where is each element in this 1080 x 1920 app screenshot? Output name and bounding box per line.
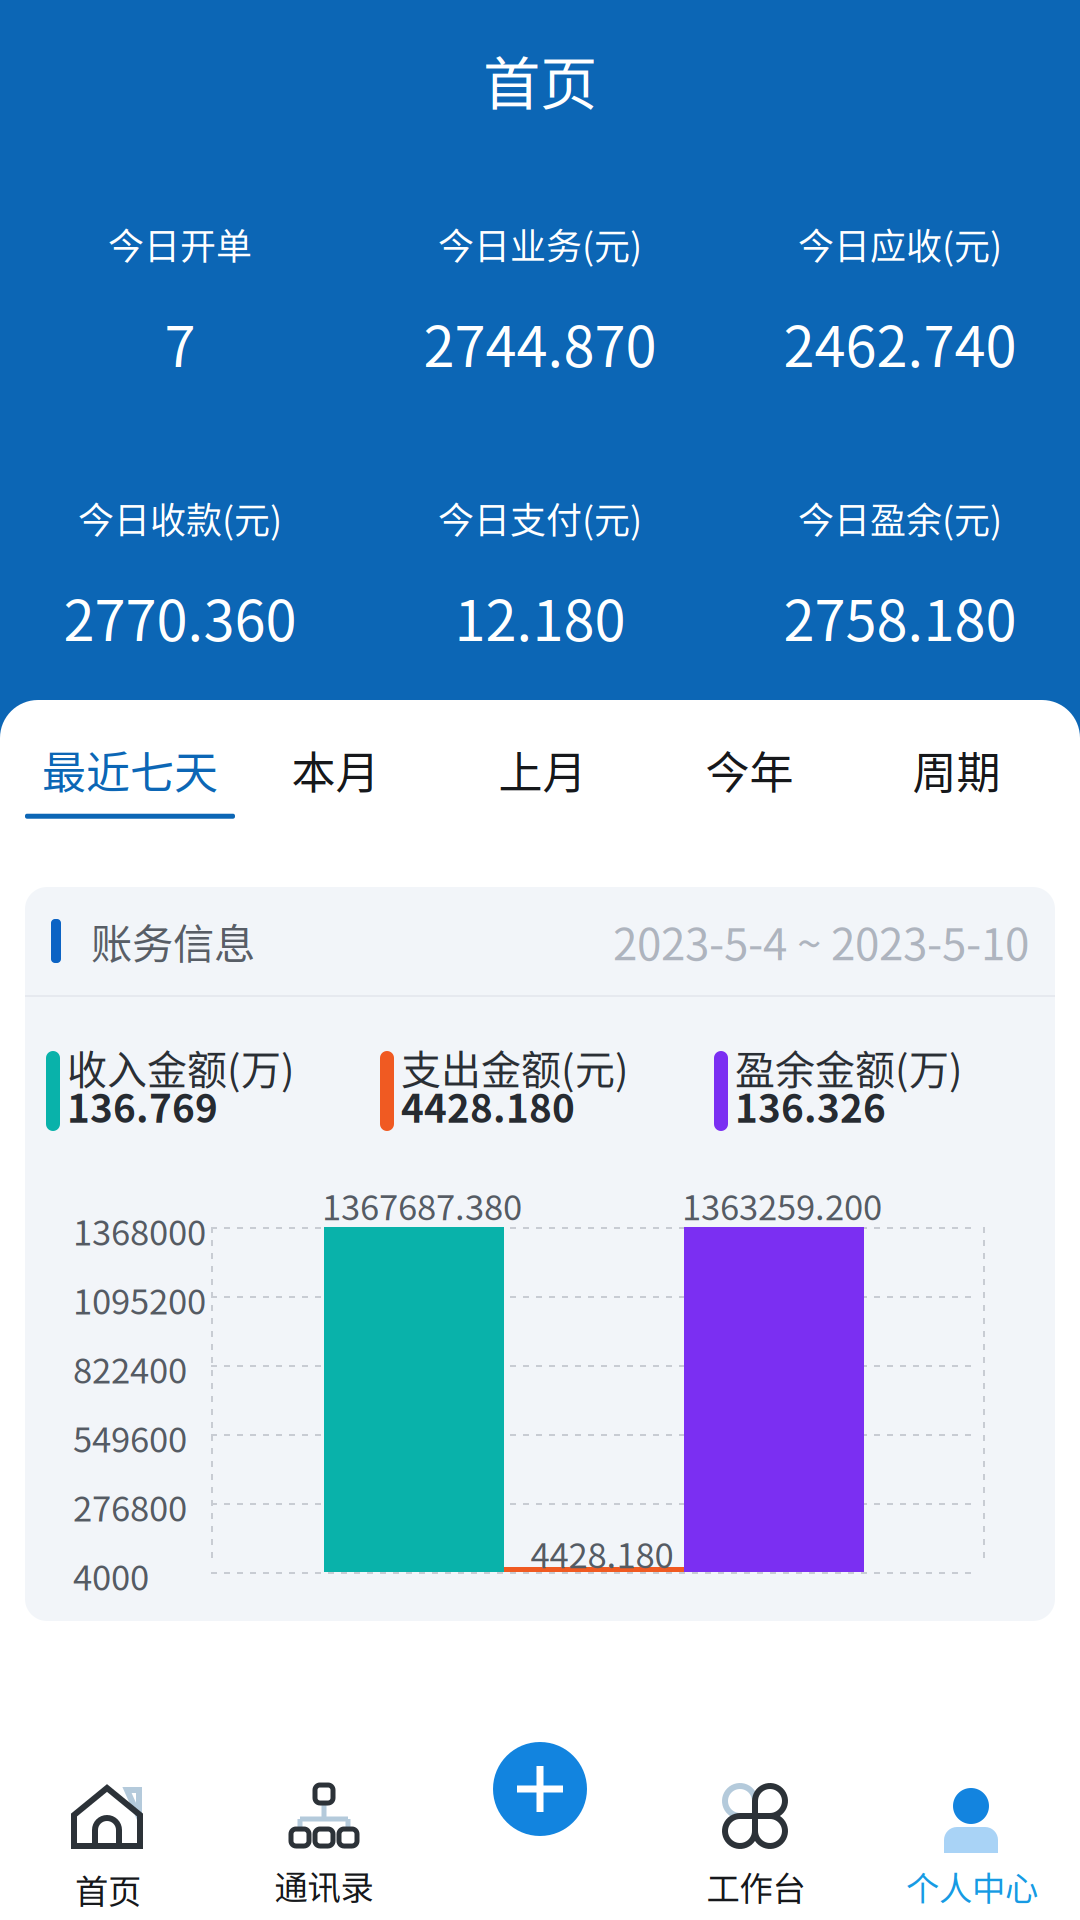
staticText: 账务信息 — [91, 911, 255, 971]
staticText: 周期 — [912, 738, 1000, 802]
staticText: 首页 — [75, 1865, 141, 1913]
button[interactable] — [432, 1780, 648, 1910]
button[interactable]: 首页 — [0, 1777, 216, 1913]
staticText: 276800 — [73, 1481, 187, 1532]
staticText: 136.769 — [67, 1078, 218, 1134]
staticText: 1363259.200 — [682, 1180, 882, 1230]
staticText: 工作台 — [706, 1862, 805, 1910]
staticText: 今日业务(元) — [438, 218, 642, 270]
staticText: 盈余金额(万) — [735, 1038, 963, 1096]
button[interactable]: 今年 — [646, 738, 853, 819]
staticText: 4428.180 — [530, 1528, 673, 1578]
staticText: 822400 — [73, 1343, 187, 1394]
staticText: 1095200 — [73, 1274, 206, 1325]
staticText: 2462.740 — [783, 302, 1016, 383]
staticText: 今日支付(元) — [438, 492, 642, 544]
staticText: 1367687.380 — [322, 1180, 522, 1230]
staticText: 7 — [164, 302, 195, 383]
staticText: 收入金额(万) — [67, 1038, 295, 1096]
button[interactable]: 最近七天 — [25, 738, 232, 819]
staticText: 2023-5-4 ~ 2023-5-10 — [613, 909, 1029, 973]
button[interactable]: 个人中心 — [864, 1780, 1080, 1910]
button[interactable]: 通讯录 — [216, 1781, 432, 1909]
staticText: 549600 — [73, 1412, 187, 1463]
staticText: 4000 — [73, 1550, 149, 1601]
button[interactable]: 工作台 — [648, 1780, 864, 1910]
staticText: 今日应收(元) — [798, 218, 1002, 270]
staticText: 个人中心 — [906, 1862, 1038, 1910]
staticText: 通讯录 — [274, 1861, 373, 1909]
staticText: 最近七天 — [42, 738, 218, 802]
button[interactable]: 周期 — [853, 738, 1060, 819]
staticText: 2770.360 — [63, 576, 296, 657]
staticText: 今年 — [705, 738, 793, 802]
staticText: 本月 — [291, 738, 379, 802]
staticText: 上月 — [498, 738, 586, 802]
staticText: 4428.180 — [401, 1078, 575, 1134]
button[interactable]: 上月 — [439, 738, 646, 819]
staticText: 首页 — [483, 38, 597, 121]
staticText: 今日收款(元) — [78, 492, 282, 544]
staticText: 1368000 — [73, 1205, 206, 1256]
button[interactable]: 新建 — [493, 1742, 587, 1836]
staticText: 136.326 — [735, 1078, 886, 1134]
button[interactable]: 本月 — [232, 738, 439, 819]
staticText: 12.180 — [454, 576, 625, 657]
staticText: 支出金额(元) — [401, 1038, 629, 1096]
staticText: 今日盈余(元) — [798, 492, 1002, 544]
staticText: 2744.870 — [423, 302, 656, 383]
staticText: 今日开单 — [108, 218, 252, 270]
staticText: 2758.180 — [783, 576, 1016, 657]
